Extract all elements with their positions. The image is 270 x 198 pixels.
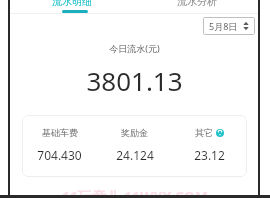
staticText: 11玩意儿·11WYX.COM bbox=[62, 187, 208, 198]
button[interactable]: 奖励金 bbox=[97, 127, 172, 163]
button[interactable]: 其它 bbox=[172, 127, 247, 163]
button[interactable]: 5月8日 bbox=[203, 17, 255, 35]
button[interactable]: 流水明细 bbox=[10, 0, 134, 13]
staticText: 基础车费 bbox=[42, 127, 78, 138]
staticText: 奖励金 bbox=[121, 127, 148, 138]
button[interactable]: 流水分析 bbox=[134, 0, 259, 13]
staticText: 流水明细 bbox=[52, 0, 92, 8]
staticText: 704.430 bbox=[37, 147, 82, 163]
staticText: 其它 bbox=[195, 127, 213, 138]
staticText: 24.124 bbox=[116, 147, 154, 163]
staticText: 今日流水(元) bbox=[109, 42, 160, 54]
staticText: 流水分析 bbox=[177, 0, 217, 8]
staticText: 5月8日 bbox=[209, 20, 238, 32]
button[interactable]: 基础车费 bbox=[22, 127, 97, 163]
button[interactable]: 基础车费 bbox=[22, 115, 247, 177]
staticText: 23.12 bbox=[194, 147, 225, 163]
button[interactable]: 其它说明 bbox=[216, 129, 224, 137]
staticText: 3801.13 bbox=[86, 63, 183, 98]
